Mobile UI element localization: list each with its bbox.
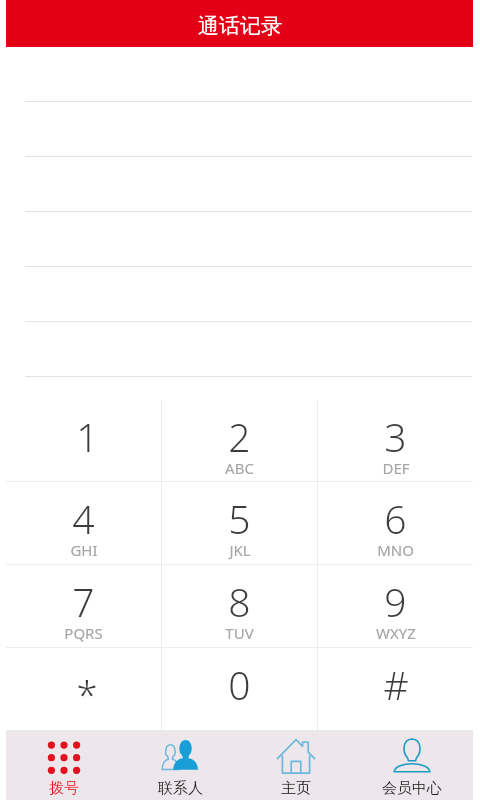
button[interactable]: # — [318, 648, 473, 730]
button[interactable] — [6, 101, 473, 156]
staticText: JKL — [229, 540, 251, 560]
button[interactable]: * — [6, 648, 161, 730]
button[interactable]: 3 — [318, 400, 473, 481]
staticText: 主页 — [281, 779, 311, 798]
button[interactable]: 6 — [318, 482, 473, 564]
staticText: 1 — [76, 410, 99, 463]
staticText: * — [76, 667, 98, 720]
button[interactable] — [6, 211, 473, 266]
staticText: GHI — [70, 540, 98, 560]
staticText: 0 — [228, 658, 251, 711]
staticText: # — [383, 658, 409, 711]
other: Home — [276, 736, 316, 776]
button[interactable]: 0 — [162, 648, 317, 730]
button[interactable] — [6, 156, 473, 211]
staticText: 拨号 — [49, 779, 79, 798]
button[interactable]: 8 — [162, 565, 317, 647]
other: Member centre — [392, 736, 432, 776]
button[interactable]: Home — [238, 730, 354, 800]
button[interactable]: 2 — [162, 400, 317, 481]
button[interactable] — [6, 266, 473, 321]
button[interactable]: 7 — [6, 565, 161, 647]
button[interactable] — [6, 321, 473, 376]
staticText: 6 — [384, 492, 407, 545]
button[interactable]: Member centre — [354, 730, 470, 800]
staticText: 7 — [72, 575, 95, 628]
staticText: 联系人 — [158, 779, 203, 798]
staticText: 2 — [228, 410, 251, 463]
staticText: 9 — [384, 575, 407, 628]
button[interactable]: 4 — [6, 482, 161, 564]
staticText: 会员中心 — [382, 779, 442, 798]
button[interactable] — [6, 376, 473, 431]
staticText: 4 — [72, 492, 95, 545]
staticText: ABC — [225, 458, 254, 478]
staticText: DEF — [382, 458, 410, 478]
staticText: 5 — [228, 492, 251, 545]
other: Contacts — [160, 736, 200, 776]
button[interactable]: Dial — [6, 730, 122, 800]
staticText: TUV — [225, 623, 254, 643]
staticText: PQRS — [64, 623, 103, 643]
button[interactable]: 1 — [6, 400, 161, 481]
other: Dial — [44, 736, 84, 776]
button[interactable]: 9 — [318, 565, 473, 647]
staticText: 3 — [384, 410, 407, 463]
staticText: WXYZ — [376, 623, 416, 643]
staticText: MNO — [377, 540, 414, 560]
button[interactable]: Contacts — [122, 730, 238, 800]
staticText: 通话记录 — [198, 13, 282, 39]
button[interactable]: 5 — [162, 482, 317, 564]
staticText: 8 — [228, 575, 251, 628]
